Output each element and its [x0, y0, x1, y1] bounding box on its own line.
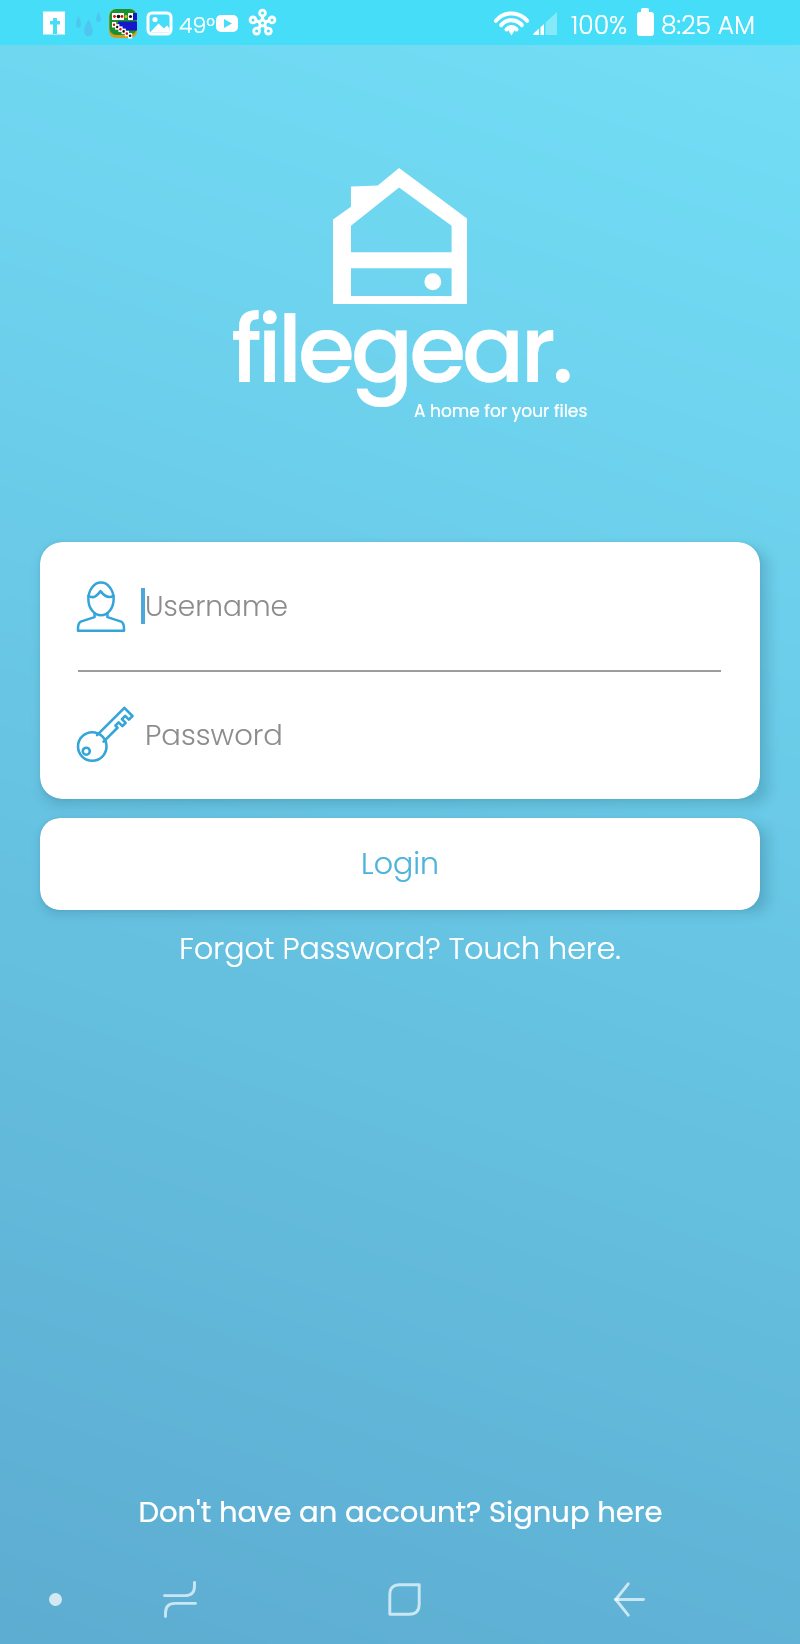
staticText: 49° — [179, 10, 215, 41]
staticText: A home for your files — [414, 399, 588, 423]
button[interactable]: Back — [599, 1569, 659, 1629]
button[interactable]: Username — [40, 542, 760, 670]
button[interactable]: Password — [40, 671, 760, 799]
staticText: 100% — [571, 8, 628, 43]
button[interactable]: Show keyboard — [33, 1577, 77, 1621]
button[interactable]: Recent apps — [150, 1569, 210, 1629]
staticText: Username — [145, 587, 288, 626]
button[interactable]: Forgot Password? Touch here. — [179, 928, 621, 970]
staticText: Login — [361, 843, 439, 885]
staticText: Password — [145, 715, 283, 756]
button[interactable]: Login — [40, 818, 760, 910]
button[interactable]: Home — [374, 1569, 434, 1629]
button[interactable]: Don't have an account? Signup here — [138, 1492, 663, 1533]
staticText: 8:25 AM — [661, 8, 756, 43]
staticText: filegear. — [231, 285, 570, 414]
